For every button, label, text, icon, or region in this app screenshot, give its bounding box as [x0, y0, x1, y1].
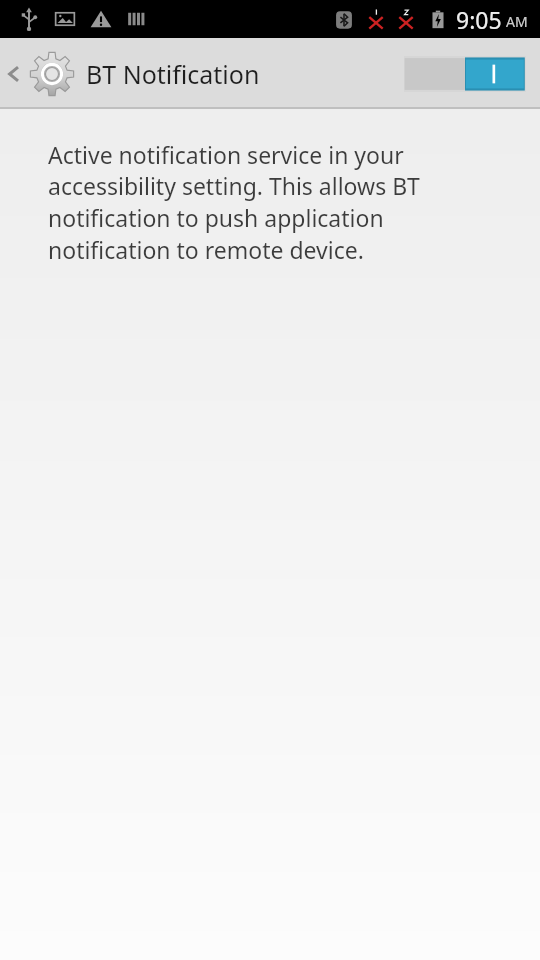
- other: Back: [4, 64, 24, 84]
- staticText: Active notification service in your acce…: [48, 139, 496, 266]
- staticText: BT Notification: [86, 57, 260, 91]
- staticText: 9:05: [456, 4, 502, 35]
- button[interactable]: Back: [0, 38, 378, 109]
- button[interactable]: BT Notification on: [404, 56, 526, 92]
- staticText: AM: [506, 12, 528, 31]
